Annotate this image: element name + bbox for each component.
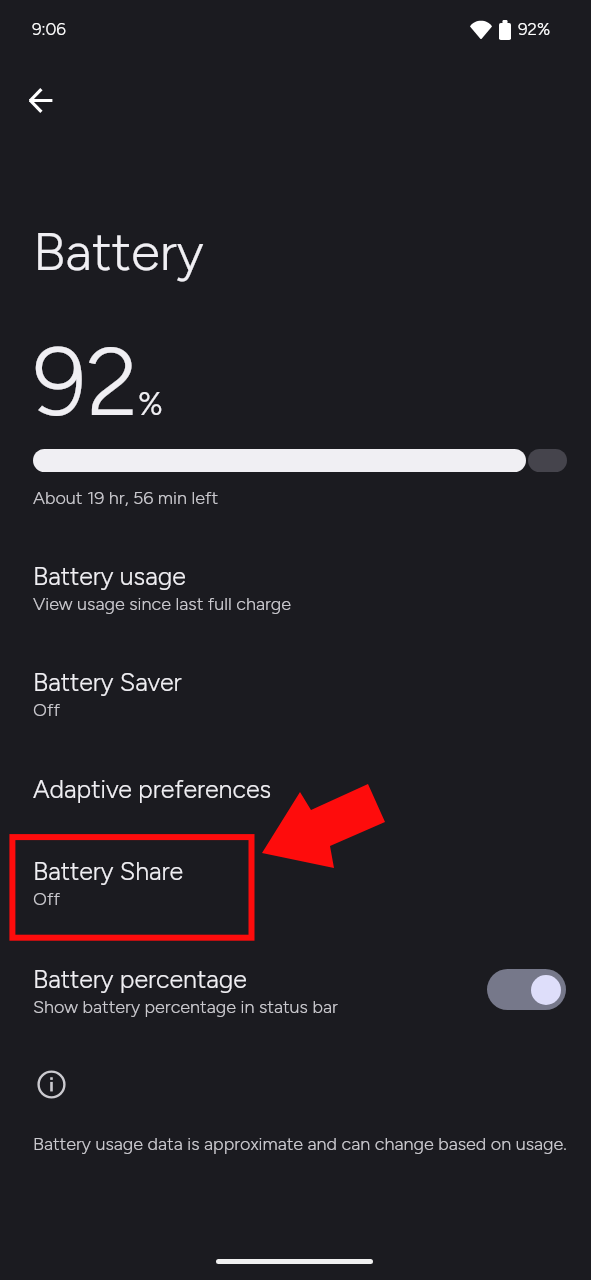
button[interactable]: Battery usage	[0, 549, 591, 625]
other: Information	[37, 1070, 66, 1099]
staticText: Off	[33, 888, 60, 910]
staticText: 92%	[518, 19, 551, 39]
staticText: Battery	[33, 220, 204, 284]
button[interactable]: Battery Saver	[0, 655, 591, 731]
staticText: %	[138, 385, 163, 423]
staticText: View usage since last full charge	[33, 593, 292, 615]
button[interactable]: Battery percentage toggle, on	[487, 969, 566, 1010]
staticText: Adaptive preferences	[33, 774, 272, 804]
staticText: Show battery percentage in status bar	[33, 996, 338, 1018]
button[interactable]: Battery percentage	[0, 954, 591, 1028]
staticText: Battery usage data is approximate and ca…	[33, 1133, 567, 1155]
staticText: Battery percentage	[33, 964, 247, 994]
button[interactable]: Adaptive preferences	[0, 762, 591, 810]
staticText: Battery Share	[33, 856, 184, 886]
staticText: Off	[33, 699, 60, 721]
staticText: 92	[33, 325, 139, 439]
staticText: Battery Saver	[33, 667, 182, 697]
staticText: 9:06	[32, 19, 66, 39]
button[interactable]: Back	[17, 78, 64, 125]
staticText: About 19 hr, 56 min left	[33, 487, 219, 509]
button[interactable]: Battery Share	[0, 844, 591, 920]
staticText: Battery usage	[33, 561, 186, 591]
